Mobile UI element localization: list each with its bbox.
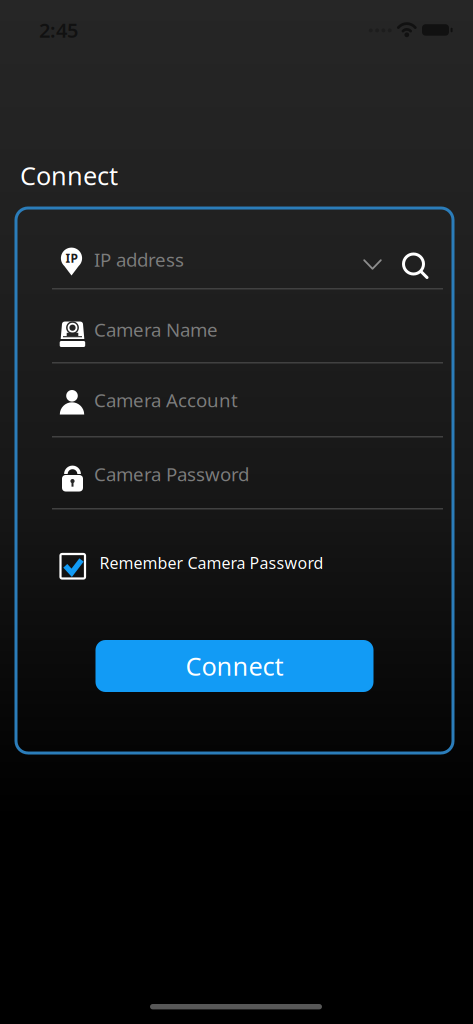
button[interactable]: Choose recent IP address [357,253,388,276]
staticText: Camera Account [94,387,238,412]
button[interactable]: Search for cameras [396,247,433,284]
staticText: IP [65,250,77,266]
staticText: Camera Password [94,461,249,486]
staticText: Remember Camera Password [99,552,323,573]
button[interactable]: Camera Account [16,363,453,437]
button[interactable]: IP [16,208,453,289]
staticText: Connect [185,649,283,683]
staticText: 2:45 [39,17,78,43]
button[interactable]: Connect [95,640,373,692]
button[interactable]: Camera Name [16,289,453,363]
button[interactable]: Remember Camera Password [60,549,320,580]
staticText: Camera Name [94,317,218,342]
staticText: Connect [20,158,118,192]
button[interactable]: Home [150,1004,322,1009]
staticText: IP address [94,247,184,272]
button[interactable]: Camera Password [16,437,453,509]
